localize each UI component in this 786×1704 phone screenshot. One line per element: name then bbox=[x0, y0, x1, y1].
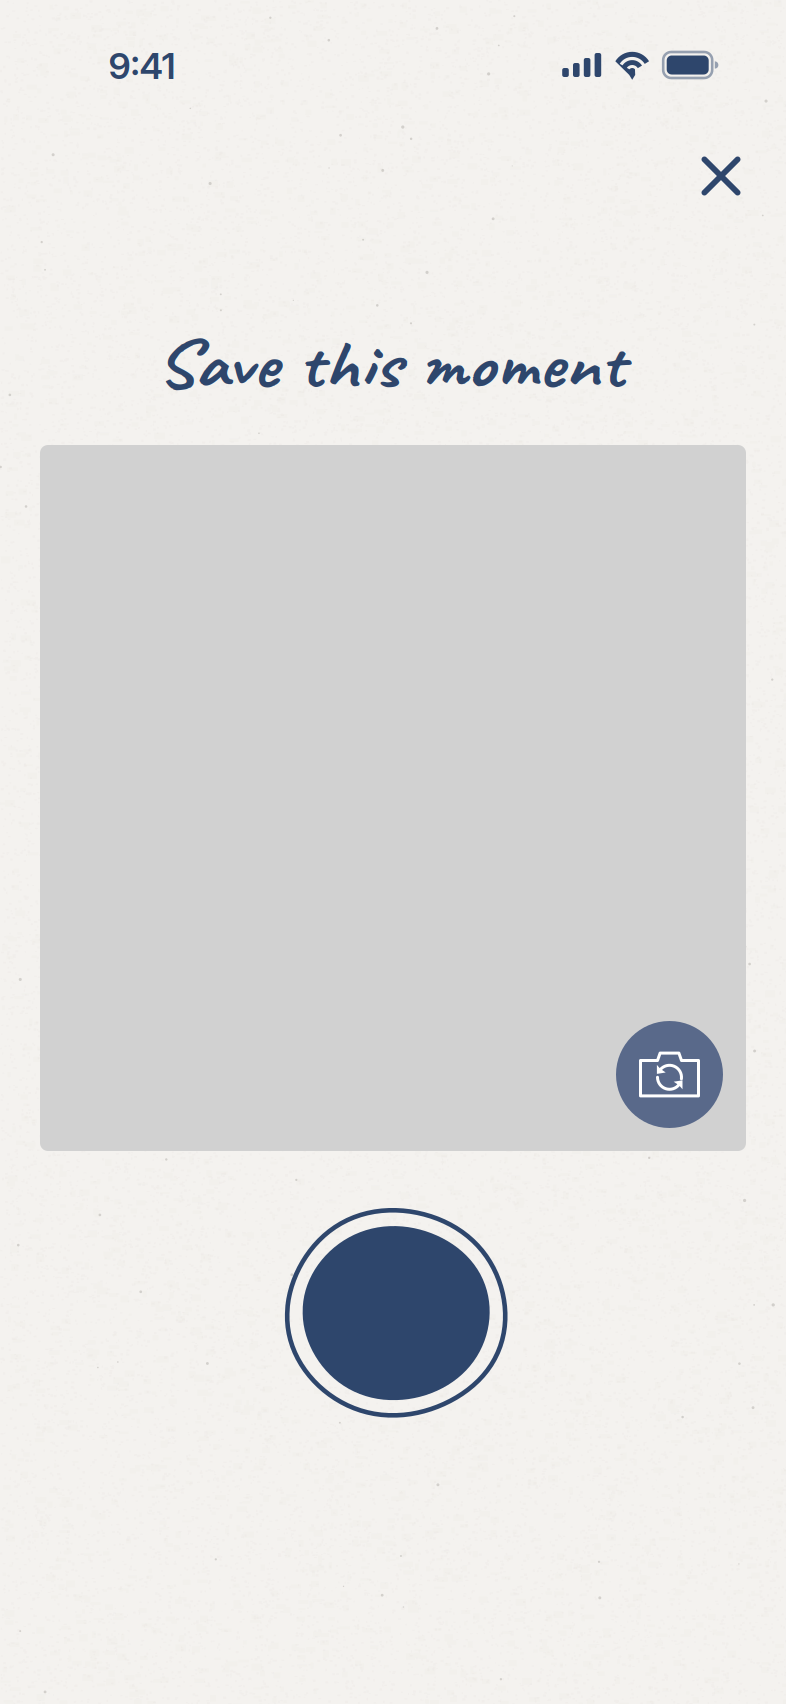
button[interactable]: Flip camera bbox=[616, 1021, 723, 1128]
staticText: Save this moment bbox=[154, 315, 625, 413]
staticText: 9:41 bbox=[108, 44, 175, 88]
button[interactable]: Take photo bbox=[285, 1205, 507, 1421]
button[interactable]: Close bbox=[683, 138, 759, 214]
